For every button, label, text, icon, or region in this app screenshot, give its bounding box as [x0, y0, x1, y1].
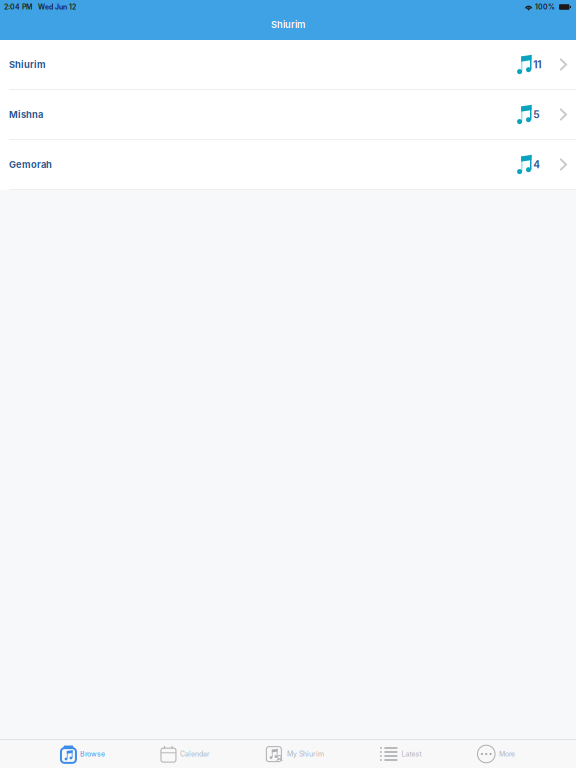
staticText: More	[499, 750, 515, 758]
staticText: Browse	[80, 750, 105, 758]
staticText: Calendar	[180, 750, 210, 758]
staticText: 5	[533, 108, 539, 121]
staticText: My Shiurim	[287, 750, 324, 758]
staticText: Gemorah	[9, 159, 52, 170]
staticText: Latest	[401, 750, 421, 758]
staticText: Wed Jun 12	[38, 3, 76, 11]
button[interactable]: Gemorah	[0, 140, 576, 189]
staticText: Shiurim	[271, 19, 305, 30]
button[interactable]: My Shiurim	[266, 740, 324, 768]
staticText: Mishna	[9, 109, 43, 120]
button[interactable]: Mishna	[0, 90, 576, 139]
button[interactable]: Calendar	[161, 740, 210, 768]
button[interactable]: Shiurim	[0, 40, 576, 89]
staticText: Shiurim	[9, 59, 46, 70]
staticText: 2:04 PM	[4, 3, 32, 11]
button[interactable]: Browse	[61, 740, 105, 768]
staticText: 4	[533, 158, 540, 171]
button[interactable]: More	[477, 740, 515, 768]
button[interactable]: Latest	[380, 740, 421, 768]
staticText: 11	[533, 58, 541, 71]
staticText: 100%	[535, 3, 555, 11]
